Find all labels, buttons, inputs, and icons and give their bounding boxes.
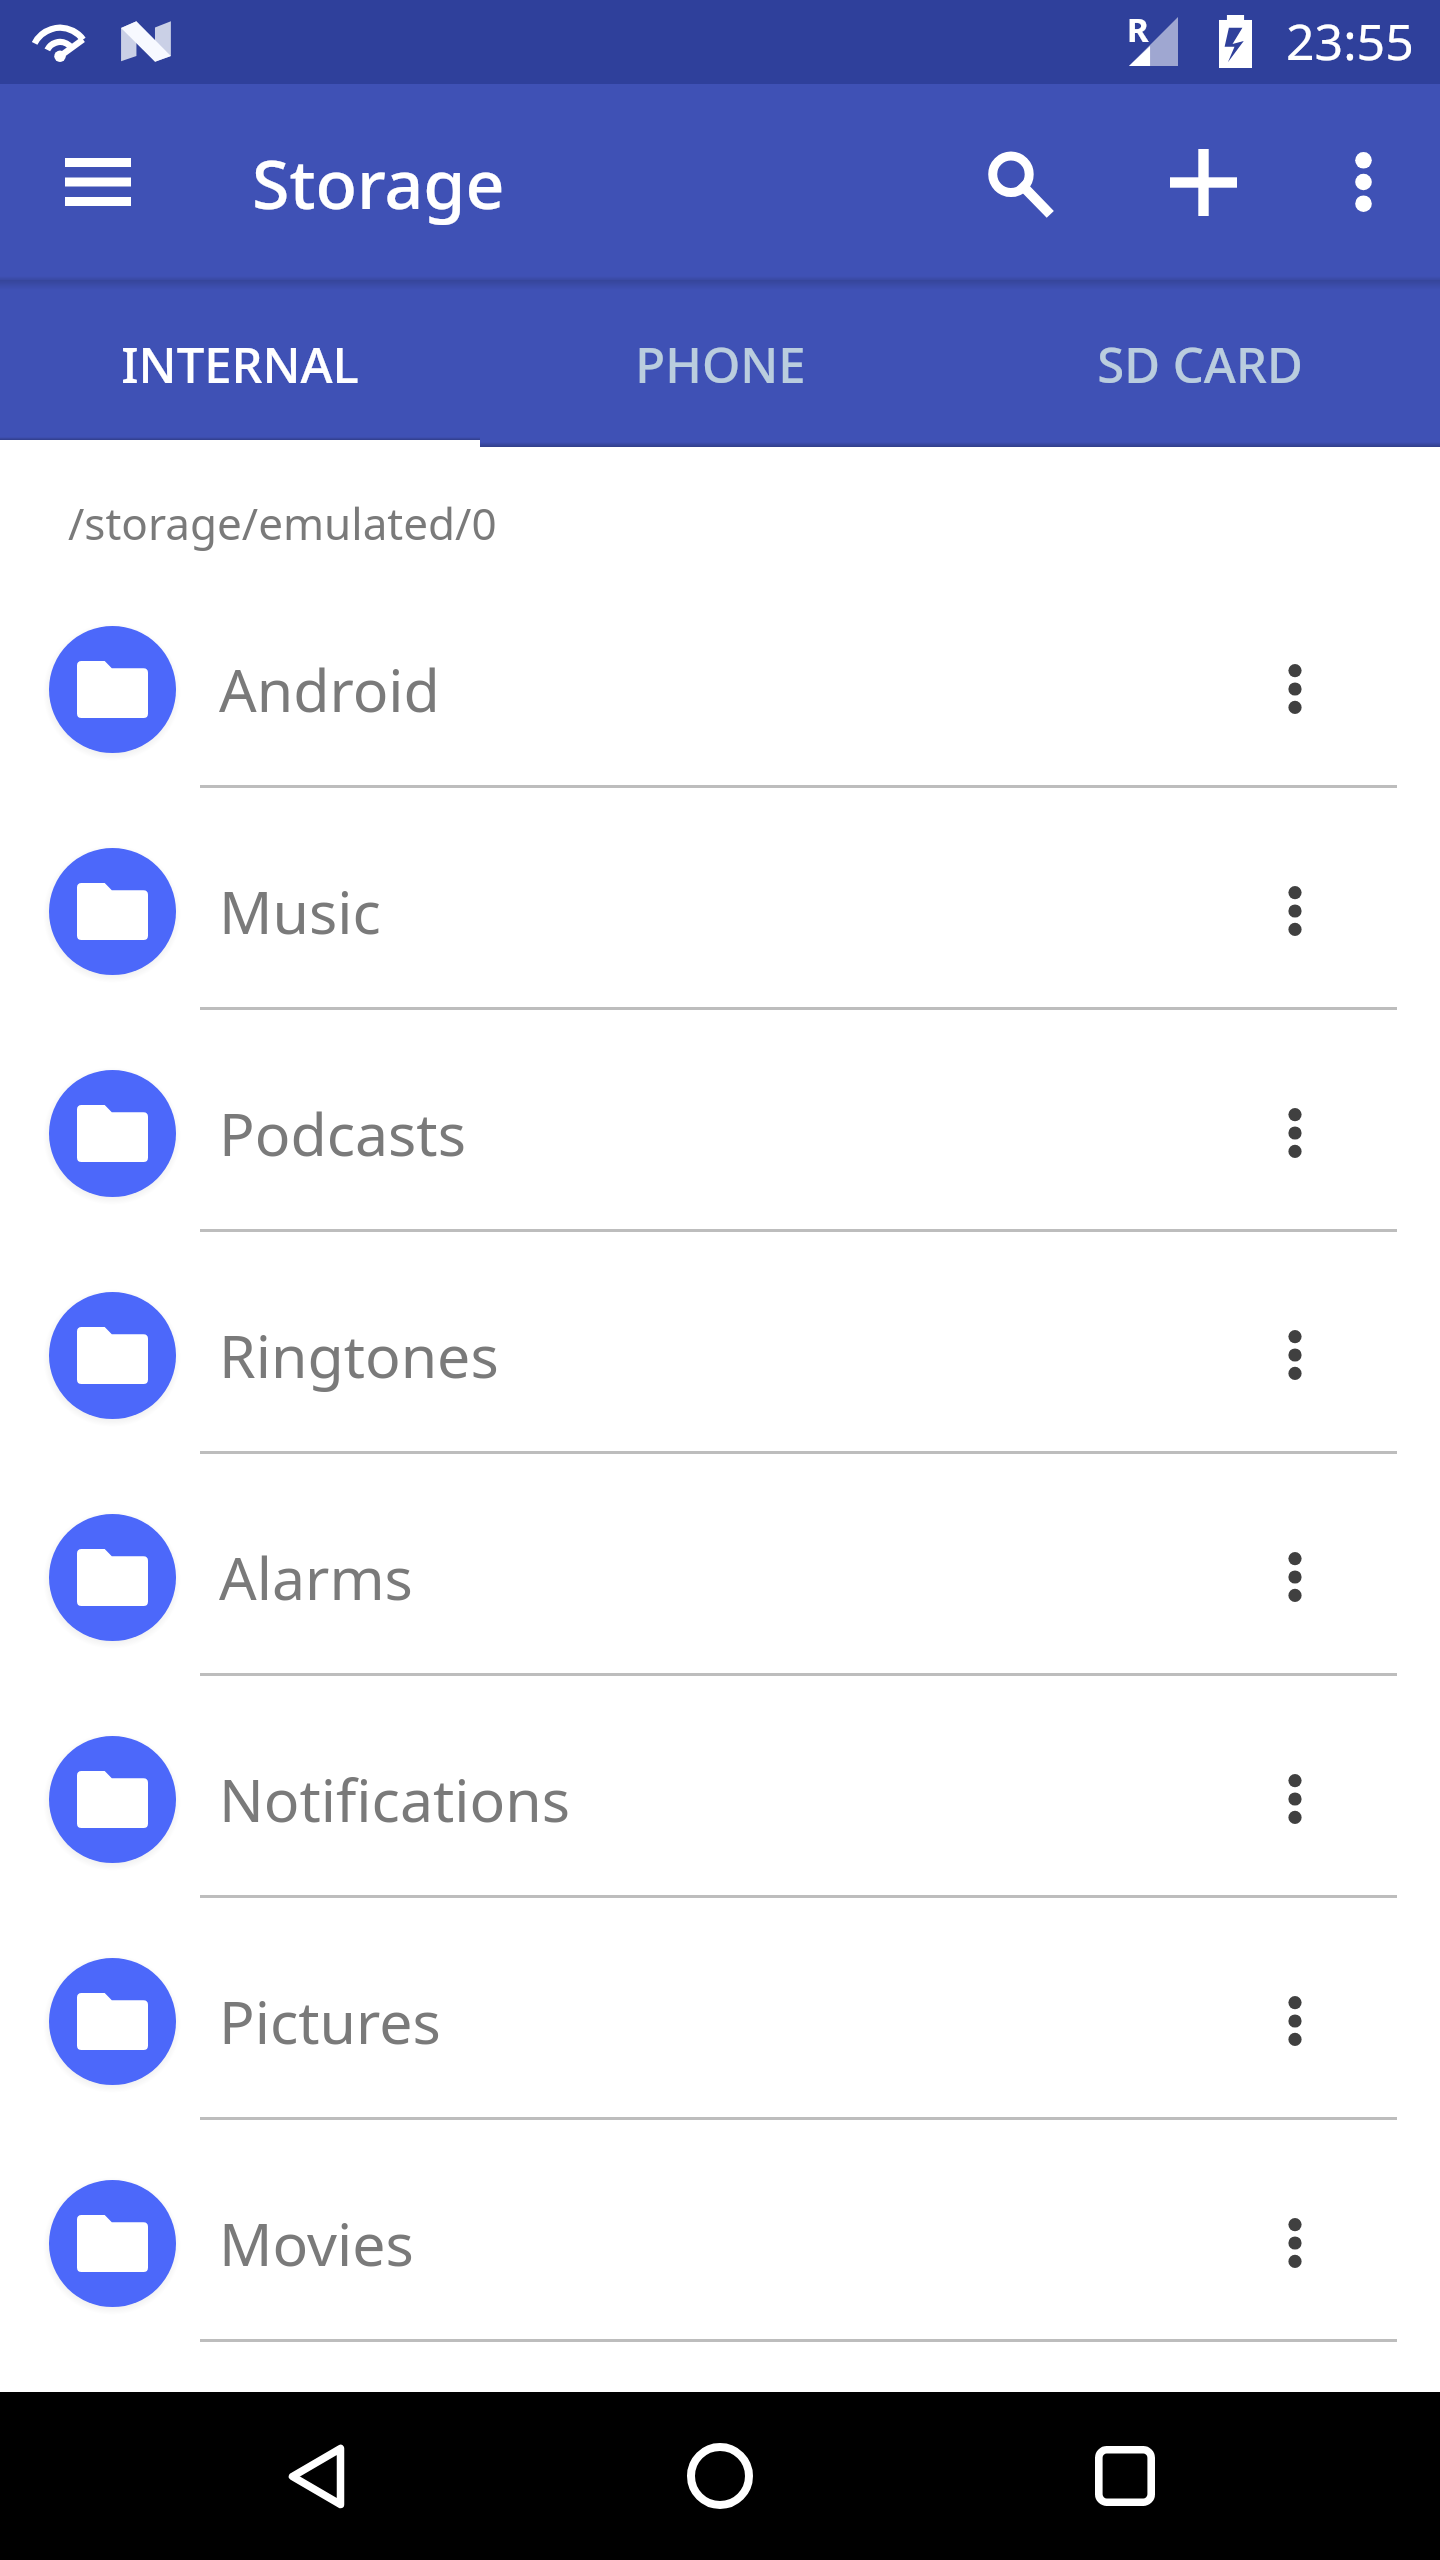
button[interactable]: Music: [0, 800, 1440, 1022]
staticText: Alarms: [219, 1537, 413, 1617]
button[interactable]: More options: [1235, 851, 1355, 971]
button[interactable]: SD CARD: [960, 280, 1440, 447]
button[interactable]: More options: [1303, 122, 1423, 242]
button[interactable]: Home: [655, 2411, 785, 2541]
button[interactable]: INTERNAL: [0, 280, 480, 447]
staticText: Storage: [252, 136, 505, 229]
staticText: Podcasts: [219, 1093, 466, 1173]
staticText: SD CARD: [1097, 331, 1303, 398]
button[interactable]: More options: [1235, 1739, 1355, 1859]
staticText: Ringtones: [219, 1315, 499, 1395]
staticText: Android: [219, 649, 440, 729]
button[interactable]: Notifications: [0, 1688, 1440, 1910]
button[interactable]: More options: [1235, 629, 1355, 749]
button[interactable]: More options: [1235, 1295, 1355, 1415]
button[interactable]: More options: [1235, 1517, 1355, 1637]
button[interactable]: Back: [251, 2411, 381, 2541]
button[interactable]: More options: [1235, 1073, 1355, 1193]
button[interactable]: Recents: [1060, 2411, 1190, 2541]
staticText: Pictures: [219, 1981, 441, 2061]
button[interactable]: Podcasts: [0, 1022, 1440, 1244]
staticText: 23:55: [1286, 7, 1414, 75]
button[interactable]: Search: [953, 117, 1083, 247]
staticText: INTERNAL: [121, 331, 359, 398]
button[interactable]: Menu: [31, 115, 165, 249]
staticText: R: [1127, 7, 1149, 52]
button[interactable]: More options: [1235, 1961, 1355, 2081]
button[interactable]: PHONE: [480, 280, 960, 447]
staticText: PHONE: [635, 331, 806, 398]
button[interactable]: Movies: [0, 2132, 1440, 2354]
button[interactable]: Alarms: [0, 1466, 1440, 1688]
button[interactable]: More options: [1235, 2183, 1355, 2303]
staticText: Movies: [219, 2203, 414, 2283]
button[interactable]: Add: [1138, 117, 1268, 247]
staticText: Notifications: [219, 1759, 570, 1839]
button[interactable]: Android: [0, 578, 1440, 800]
staticText: Music: [219, 871, 381, 951]
button[interactable]: Pictures: [0, 1910, 1440, 2132]
staticText: /storage/emulated/0: [68, 493, 497, 553]
button[interactable]: Ringtones: [0, 1244, 1440, 1466]
